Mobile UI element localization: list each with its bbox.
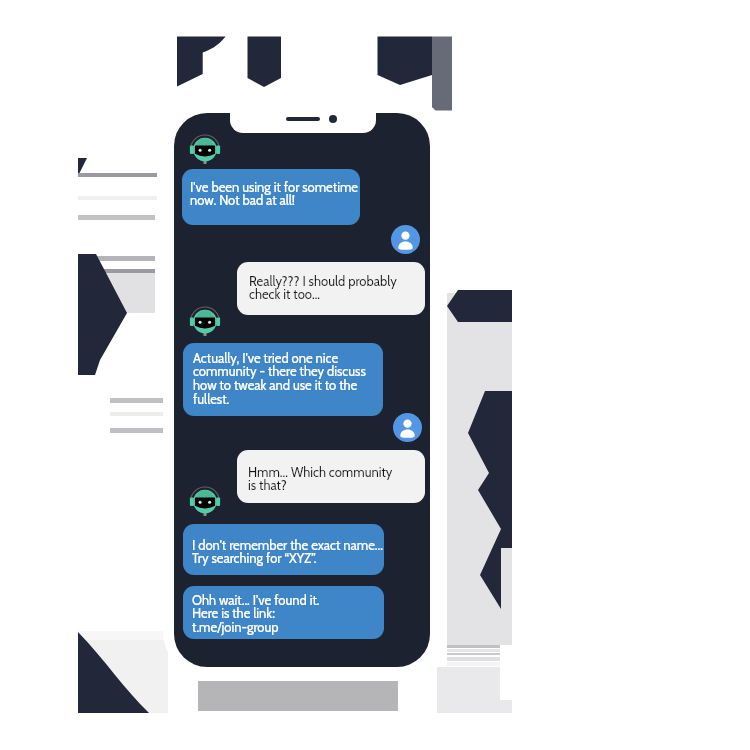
staticText: Hmm... Which community is that?: [248, 464, 393, 493]
staticText: Really??? I should probably check it too…: [249, 273, 397, 302]
button[interactable]: User avatar: [393, 413, 422, 442]
button[interactable]: I don't remember the exact name... Try s…: [183, 524, 384, 575]
button[interactable]: Really??? I should probably check it too…: [237, 262, 425, 315]
button[interactable]: Ohh wait... I've found it. Here is the l…: [183, 586, 384, 639]
staticText: Ohh wait... I've found it. Here is the l…: [192, 592, 320, 635]
staticText: Actually, I've tried one nice community …: [193, 350, 366, 407]
button[interactable]: Hmm... Which community is that?: [237, 450, 425, 503]
staticText: I don't remember the exact name... Try s…: [192, 537, 383, 566]
button[interactable]: Bot avatar: [189, 485, 221, 519]
button[interactable]: Bot avatar: [189, 133, 221, 167]
button[interactable]: User avatar: [391, 225, 420, 254]
button[interactable]: I've been using it for sometime now. Not…: [182, 169, 360, 225]
staticText: I've been using it for sometime now. Not…: [190, 179, 358, 208]
button[interactable]: Actually, I've tried one nice community …: [183, 343, 383, 416]
button[interactable]: Bot avatar: [189, 305, 221, 339]
